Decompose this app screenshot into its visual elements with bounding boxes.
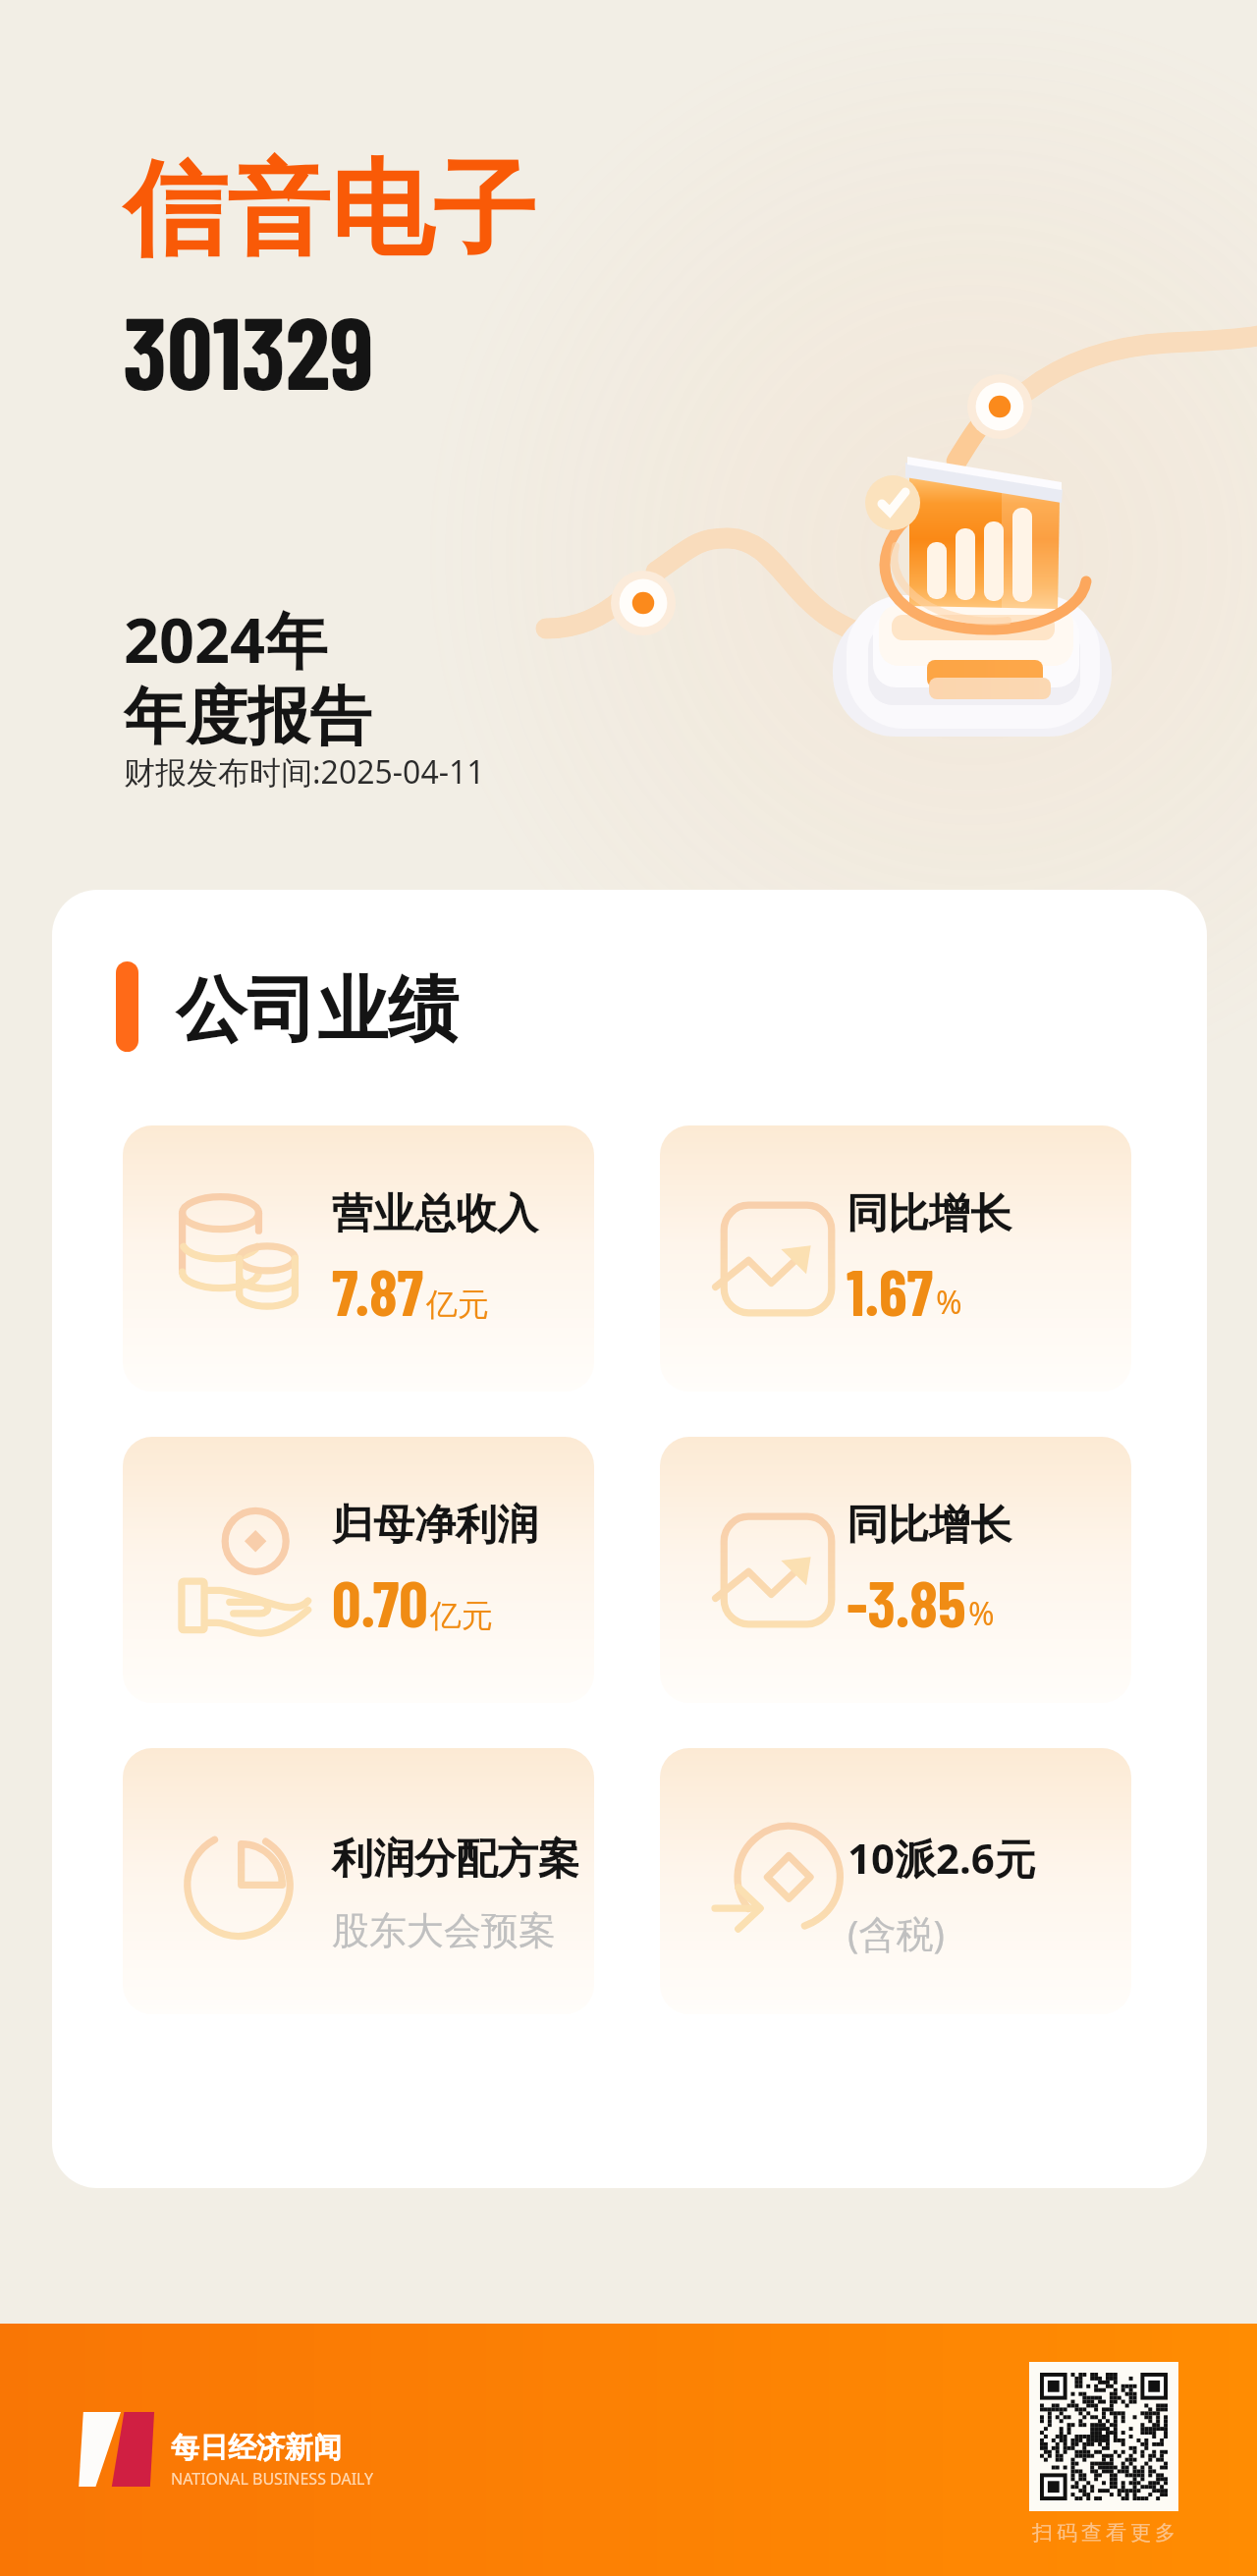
staticText: 7.87 (332, 1252, 424, 1329)
staticText: 公司业绩 (176, 966, 459, 1056)
staticText: % (936, 1281, 962, 1324)
staticText: (含税) (847, 1907, 945, 1958)
staticText: 301329 (123, 289, 374, 411)
button[interactable]: 利润分配方案 (123, 1748, 594, 2014)
button[interactable]: 营业总收入 (123, 1125, 594, 1392)
button[interactable]: 10派2.6元 (660, 1748, 1131, 2014)
staticText: 扫码查看更多 (1030, 2520, 1177, 2546)
staticText: 同比增长 (847, 1188, 1011, 1240)
staticText: 财报发布时间:2025-04-11 (124, 750, 485, 794)
button[interactable]: 归母净利润 (123, 1437, 594, 1703)
staticText: 1.67 (847, 1252, 934, 1329)
staticText: 10派2.6元 (847, 1830, 1036, 1886)
staticText: 信音电子 (124, 145, 536, 275)
staticText: 每日经济新闻 (171, 2430, 342, 2466)
button[interactable]: 同比增长 (660, 1437, 1131, 1703)
button[interactable]: 扫码查看更多 QR code (1029, 2362, 1178, 2546)
staticText: -3.85 (847, 1563, 966, 1640)
staticText: 亿元 (426, 1285, 489, 1324)
staticText: 同比增长 (847, 1500, 1011, 1552)
staticText: 利润分配方案 (332, 1834, 579, 1886)
staticText: 亿元 (430, 1596, 493, 1635)
staticText: NATIONAL BUSINESS DAILY (171, 2468, 374, 2490)
staticText: 年度报告 (124, 678, 371, 755)
staticText: 0.70 (332, 1563, 428, 1640)
button[interactable]: 每日经济新闻 National Business Daily (75, 2422, 374, 2496)
button[interactable]: 同比增长 (660, 1125, 1131, 1392)
staticText: 归母净利润 (332, 1500, 538, 1552)
staticText: % (968, 1592, 995, 1635)
staticText: 股东大会预案 (332, 1907, 556, 1954)
staticText: 营业总收入 (332, 1188, 538, 1240)
staticText: 2024年 (124, 597, 328, 682)
